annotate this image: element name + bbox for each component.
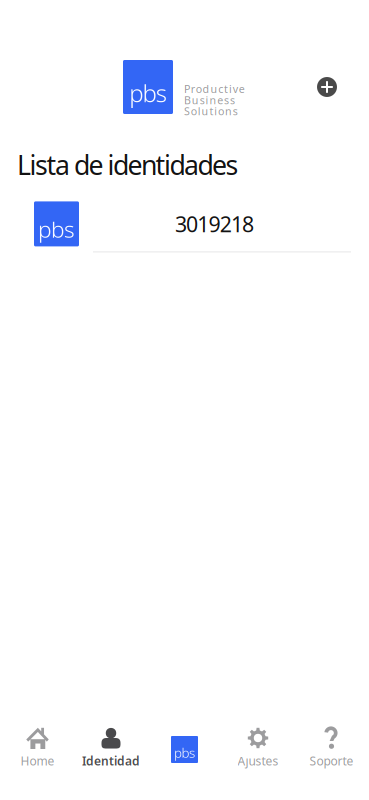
staticText: Business: [184, 93, 235, 107]
staticText: 3019218: [175, 210, 254, 238]
staticText: Ajustes: [237, 753, 278, 769]
button[interactable]: Identidad: [74, 715, 148, 779]
staticText: pbs: [38, 214, 75, 244]
staticText: pbs: [174, 744, 195, 761]
staticText: Identidad: [82, 753, 140, 769]
button[interactable]: pbs: [0, 201, 369, 252]
staticText: Productive: [184, 82, 245, 96]
staticText: Solutions: [184, 104, 238, 118]
button[interactable]: Home: [1, 715, 74, 779]
button[interactable]: Ajustes: [221, 715, 295, 779]
staticText: Lista de identidades: [17, 147, 238, 182]
button[interactable]: PBS: [148, 715, 221, 779]
staticText: pbs: [129, 77, 167, 109]
button[interactable]: Soporte: [295, 715, 368, 779]
staticText: Soporte: [309, 753, 353, 769]
button[interactable]: Add identity: [317, 77, 337, 97]
staticText: Home: [20, 753, 54, 769]
